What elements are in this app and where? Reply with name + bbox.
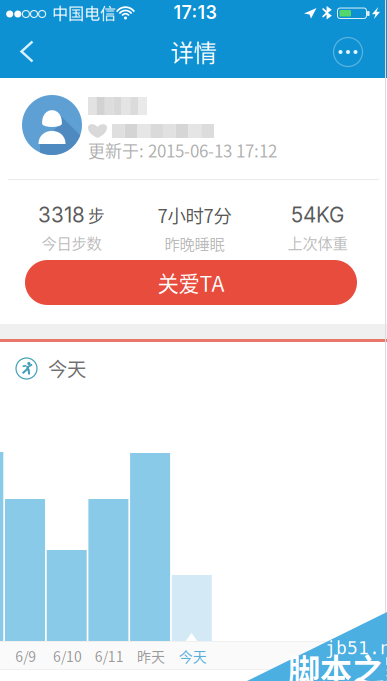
staticText: 昨晚睡眠: [164, 232, 224, 254]
staticText: 更新于: 2015-06-13 17:12: [88, 138, 277, 162]
staticText: 步: [88, 203, 105, 227]
staticText: 今天: [48, 354, 86, 382]
staticText: 详情: [170, 35, 216, 68]
staticText: 今日步数: [41, 231, 101, 254]
staticText: 脚本之家: [288, 645, 387, 681]
staticText: 昨天: [137, 646, 165, 666]
staticText: 关爱TA: [157, 267, 224, 298]
staticText: 54KG: [291, 202, 344, 227]
button[interactable]: More options: [333, 37, 362, 66]
staticText: jb51.net: [325, 637, 387, 658]
staticText: 7小时7分: [157, 202, 231, 228]
staticText: 中国电信: [52, 1, 116, 24]
staticText: 6/11: [95, 646, 124, 666]
staticText: 6/10: [53, 646, 82, 666]
button[interactable]: 关爱TA: [25, 260, 357, 305]
button[interactable]: Back: [0, 25, 54, 78]
staticText: 今天: [179, 646, 207, 666]
staticText: 3318: [38, 202, 85, 227]
staticText: 上次体重: [287, 231, 347, 254]
staticText: 6/9: [15, 646, 36, 666]
staticText: 17:13: [173, 2, 216, 23]
